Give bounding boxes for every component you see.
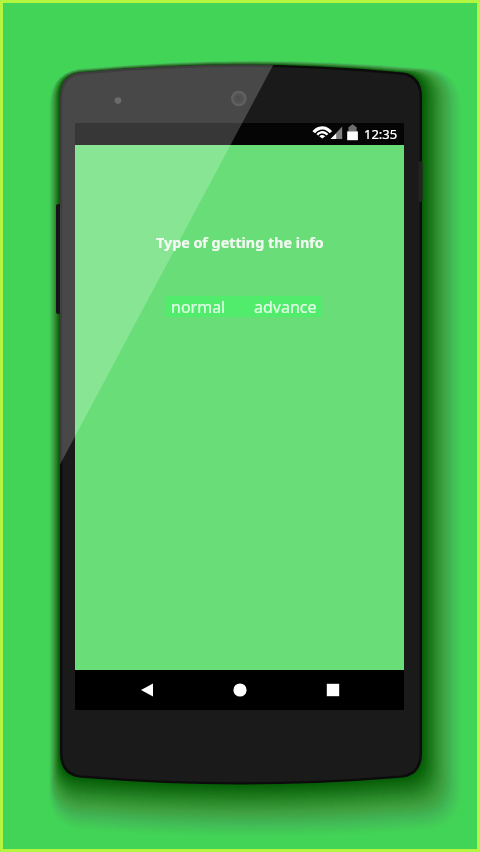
button[interactable]: Back: [137, 680, 157, 700]
staticText: normal: [171, 296, 226, 317]
staticText: advance: [254, 296, 317, 317]
staticText: 12:35: [364, 125, 398, 143]
button[interactable]: advance: [240, 296, 322, 317]
button[interactable]: Recent apps: [323, 680, 343, 700]
button[interactable]: Home: [230, 680, 250, 700]
button[interactable]: normal: [166, 296, 240, 317]
staticText: Type of getting the info: [156, 233, 324, 252]
